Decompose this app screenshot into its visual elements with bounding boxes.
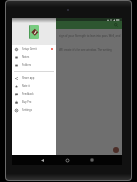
button[interactable]: Search	[113, 22, 119, 28]
staticText: WE create it's for one window. The writi…	[59, 48, 121, 52]
staticText: Buy Pro	[22, 100, 32, 104]
button[interactable]: Setup Gerrit	[12, 45, 56, 53]
staticText: Folders	[22, 63, 31, 67]
button[interactable]: Rate it	[12, 82, 56, 90]
staticText: Notes	[22, 55, 30, 59]
button[interactable]: Share app	[12, 74, 56, 82]
button[interactable]: Recents	[88, 156, 96, 164]
button[interactable]: Feedback	[12, 90, 56, 98]
staticText: Share app	[22, 76, 35, 80]
staticText: sign of your. Strength to lean into pass…	[59, 34, 121, 38]
button[interactable]: Back	[38, 156, 46, 164]
staticText: Feedback	[22, 92, 34, 96]
button[interactable]: New note	[113, 147, 119, 153]
button[interactable]: Folders	[12, 61, 56, 69]
staticText: Setup Gerrit	[22, 47, 37, 51]
staticText: Settings	[22, 108, 32, 112]
button[interactable]: Notes	[12, 53, 56, 61]
button[interactable]: Home	[63, 156, 71, 164]
button[interactable]: Buy Pro	[12, 98, 56, 106]
button[interactable]: Settings	[12, 106, 56, 114]
staticText: Rate it	[22, 84, 30, 88]
